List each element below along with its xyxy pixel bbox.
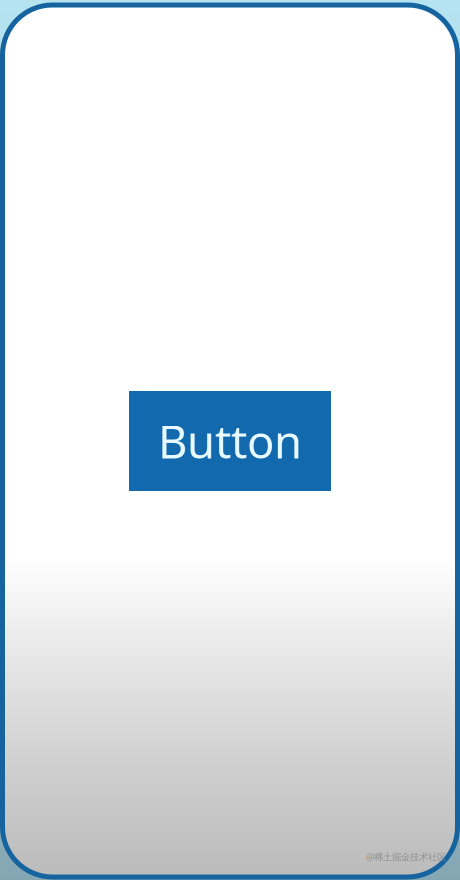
staticText: @稀土掘金技术社区 [366,851,446,863]
button[interactable]: Button [129,391,331,491]
staticText: Button [158,411,302,471]
